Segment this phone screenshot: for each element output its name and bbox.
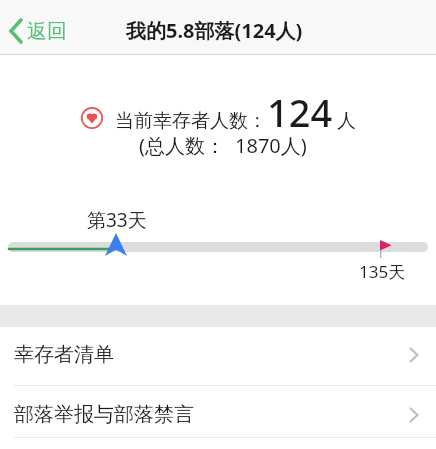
button[interactable]: 幸存者清单 [0,327,436,385]
staticText: 135天 [359,260,406,283]
staticText: 返回 [27,19,67,44]
button[interactable]: 部落举报与部落禁言 [0,386,436,437]
staticText: 124 [267,86,333,138]
staticText: 当前幸存者人数： [115,109,267,133]
staticText: 人 [337,109,356,133]
staticText: 我的5.8部落(124人) [126,17,303,44]
staticText: 部落举报与部落禁言 [14,402,194,427]
staticText: (总人数： 1870人) [139,132,307,159]
button[interactable]: 返回 [8,18,67,44]
staticText: 幸存者清单 [14,342,114,367]
staticText: 第33天 [87,207,147,233]
